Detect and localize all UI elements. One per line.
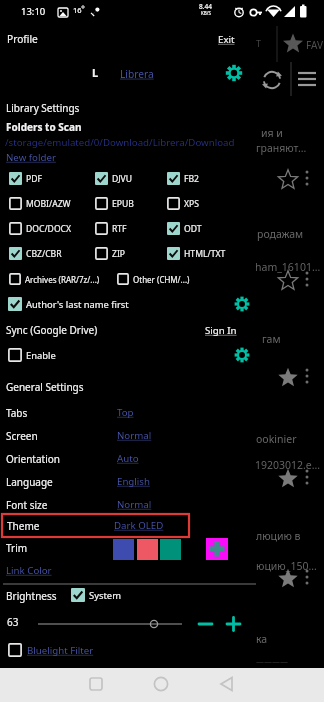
- button[interactable]: Archives (RAR/7z/...): [9, 273, 100, 285]
- staticText: Sync (Google Drive): [6, 323, 98, 337]
- button[interactable]: Back: [211, 668, 243, 700]
- button[interactable]: FB2: [167, 172, 199, 185]
- button[interactable]: ODT: [167, 222, 202, 235]
- button[interactable]: More options: [300, 469, 316, 485]
- button[interactable]: More options: [300, 170, 316, 186]
- staticText: Library Settings: [6, 101, 80, 115]
- staticText: English: [117, 475, 150, 488]
- button[interactable]: Author's last name first: [8, 297, 129, 311]
- staticText: Theme: [7, 519, 40, 533]
- button[interactable]: MOBI/AZW: [9, 197, 71, 210]
- staticText: New folder: [6, 151, 56, 164]
- staticText: Folders to Scan: [6, 120, 82, 134]
- button[interactable]: RTF: [95, 222, 127, 235]
- button[interactable]: More options: [300, 271, 316, 287]
- button[interactable]: Recents: [80, 668, 112, 700]
- button[interactable]: Favourite: [277, 367, 299, 389]
- button[interactable]: Tabs: [0, 403, 250, 423]
- button[interactable]: Home: [145, 668, 177, 700]
- staticText: люцию в: [256, 529, 301, 543]
- staticText: /storage/emulated/0/Download/Librera/Dow…: [5, 136, 235, 149]
- staticText: EPUB: [112, 198, 134, 210]
- staticText: Librera: [120, 67, 154, 81]
- staticText: ODT: [184, 223, 202, 235]
- staticText: FAV: [306, 38, 323, 52]
- staticText: 13:10: [21, 5, 46, 18]
- button[interactable]: Favourite: [277, 568, 299, 590]
- staticText: Exit: [218, 33, 235, 46]
- staticText: Language: [6, 475, 53, 489]
- staticText: Auto: [117, 452, 139, 465]
- button[interactable]: Add trim colour: [206, 538, 228, 560]
- staticText: граняют…: [256, 141, 307, 155]
- staticText: ZIP: [112, 248, 126, 260]
- button[interactable]: New folder: [6, 151, 56, 167]
- button[interactable]: PDF: [9, 172, 42, 185]
- button[interactable]: Refresh: [260, 68, 284, 92]
- button[interactable]: CBZ/CBR: [9, 247, 62, 260]
- button[interactable]: ZIP: [95, 247, 126, 260]
- button[interactable]: Link Color: [6, 564, 52, 580]
- button[interactable]: Favourite: [277, 468, 299, 490]
- staticText: Top: [117, 406, 134, 419]
- staticText: RTF: [112, 223, 127, 235]
- button[interactable]: Theme: [2, 514, 189, 537]
- button[interactable]: Exit: [214, 28, 246, 50]
- staticText: Link Color: [6, 564, 52, 577]
- button[interactable]: Favourite: [277, 270, 299, 292]
- button[interactable]: Favourite: [277, 169, 299, 191]
- staticText: ham_16101…: [255, 260, 321, 274]
- button[interactable]: Other (CHM/...): [117, 273, 190, 285]
- staticText: родажам: [257, 227, 304, 241]
- button[interactable]: Font size: [0, 495, 250, 515]
- staticText: гам: [262, 332, 281, 346]
- staticText: 63: [7, 615, 19, 629]
- staticText: L: [92, 65, 99, 80]
- staticText: Dark OLED: [114, 519, 164, 532]
- button[interactable]: Profile: [0, 26, 256, 54]
- button[interactable]: DOC/DOCX: [9, 222, 72, 235]
- button[interactable]: Author name settings: [233, 295, 251, 313]
- staticText: CBZ/CBR: [26, 248, 62, 260]
- button[interactable]: Librera: [120, 64, 154, 84]
- button[interactable]: Enable: [8, 348, 56, 362]
- staticText: Brightness: [6, 589, 57, 603]
- staticText: PDF: [26, 173, 42, 185]
- staticText: General Settings: [6, 380, 84, 394]
- button[interactable]: XPS: [167, 197, 199, 210]
- button[interactable]: System: [71, 588, 121, 602]
- button[interactable]: Menu: [297, 69, 317, 89]
- button[interactable]: More options: [300, 569, 316, 585]
- button[interactable]: Language: [0, 472, 250, 492]
- staticText: DOC/DOCX: [26, 223, 72, 235]
- button[interactable]: Orientation: [0, 449, 250, 469]
- staticText: System: [89, 589, 121, 602]
- button[interactable]: Sign In: [205, 322, 237, 340]
- staticText: Author's last name first: [26, 298, 129, 311]
- staticText: Orientation: [6, 452, 60, 466]
- staticText: ookinier: [256, 432, 297, 446]
- button[interactable]: More options: [300, 368, 316, 384]
- staticText: Other (CHM/...): [133, 274, 190, 285]
- button[interactable]: Bluelight Filter: [8, 643, 94, 657]
- button[interactable]: HTML/TXT: [167, 247, 226, 260]
- staticText: 8.44: [199, 2, 212, 11]
- button[interactable]: Screen: [0, 426, 250, 446]
- staticText: FB2: [184, 173, 199, 185]
- staticText: ия и: [261, 126, 283, 140]
- button[interactable]: Settings: [224, 63, 244, 83]
- staticText: Profile: [7, 32, 38, 46]
- button[interactable]: DJVU: [95, 172, 133, 185]
- staticText: юцию_150…: [256, 559, 317, 573]
- staticText: HTML/TXT: [184, 248, 226, 260]
- button[interactable]: EPUB: [95, 197, 134, 210]
- staticText: Trim: [6, 541, 28, 555]
- staticText: XPS: [184, 198, 199, 210]
- button[interactable]: Sync settings: [233, 346, 251, 364]
- staticText: Sign In: [205, 324, 237, 337]
- staticText: KB/S: [201, 10, 211, 16]
- staticText: Tabs: [6, 406, 28, 420]
